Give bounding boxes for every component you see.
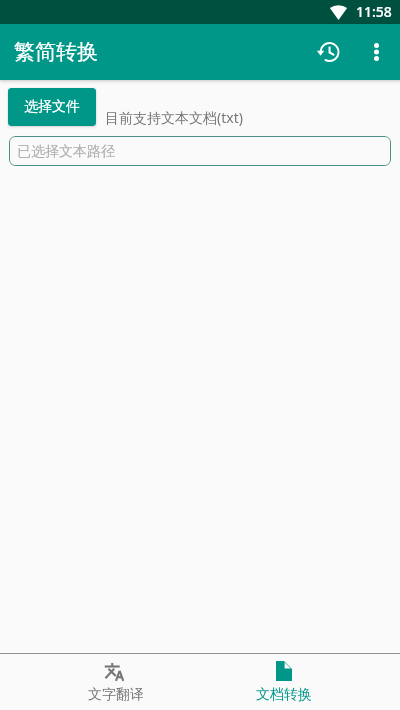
staticText: 选择文件	[24, 98, 80, 116]
staticText: 已选择文本路径	[17, 143, 115, 161]
button[interactable]: More options	[352, 28, 400, 76]
staticText: 11:58	[356, 2, 392, 21]
button[interactable]: 选择文件	[8, 88, 96, 126]
staticText: 文字翻译	[88, 686, 144, 704]
staticText: 目前支持文本文档(txt)	[105, 108, 243, 127]
staticText: 繁简转换	[14, 39, 98, 65]
button[interactable]: 文档转换	[200, 654, 368, 710]
button[interactable]: 已选择文本路径	[9, 136, 391, 166]
button[interactable]: 文字翻译	[32, 654, 200, 710]
staticText: 文档转换	[256, 686, 312, 704]
button[interactable]: History	[304, 28, 352, 76]
